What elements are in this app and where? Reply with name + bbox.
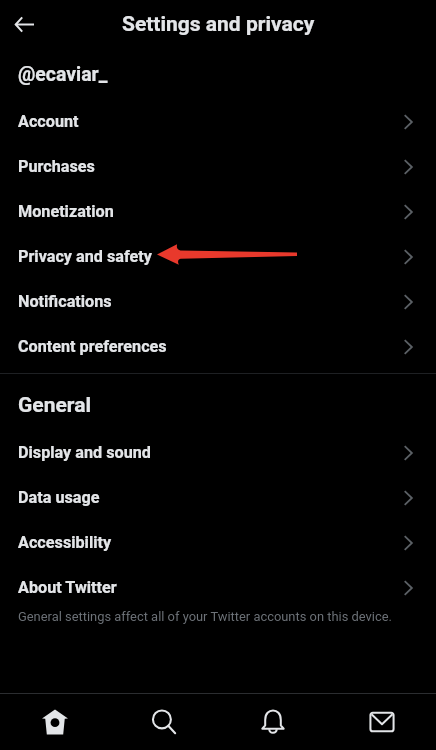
button[interactable]: Purchases bbox=[0, 144, 436, 189]
staticText: About Twitter bbox=[18, 578, 396, 597]
button[interactable]: Notifications bbox=[218, 694, 327, 750]
staticText: Settings and privacy bbox=[122, 12, 315, 37]
button[interactable]: Account bbox=[0, 99, 436, 144]
button[interactable]: About Twitter bbox=[0, 565, 436, 610]
staticText: @ecaviar_ bbox=[18, 63, 108, 86]
staticText: Notifications bbox=[18, 292, 396, 311]
staticText: Monetization bbox=[18, 202, 396, 221]
button[interactable]: Home bbox=[0, 694, 109, 750]
button[interactable]: Content preferences bbox=[0, 324, 436, 369]
button[interactable]: Data usage bbox=[0, 475, 436, 520]
button[interactable]: Accessibility bbox=[0, 520, 436, 565]
button[interactable]: Back bbox=[6, 6, 42, 42]
staticText: Content preferences bbox=[18, 337, 396, 356]
staticText: Purchases bbox=[18, 157, 396, 176]
staticText: General bbox=[18, 393, 91, 418]
staticText: General settings affect all of your Twit… bbox=[18, 609, 392, 624]
button[interactable]: Display and sound bbox=[0, 430, 436, 475]
staticText: Display and sound bbox=[18, 443, 396, 462]
staticText: Accessibility bbox=[18, 533, 396, 552]
button[interactable]: Search bbox=[109, 694, 218, 750]
button[interactable]: Monetization bbox=[0, 189, 436, 234]
staticText: Account bbox=[18, 112, 396, 131]
button[interactable]: Notifications bbox=[0, 279, 436, 324]
staticText: Data usage bbox=[18, 488, 396, 507]
button[interactable]: Privacy and safety bbox=[0, 234, 436, 279]
button[interactable]: Messages bbox=[327, 694, 436, 750]
staticText: Privacy and safety bbox=[18, 247, 396, 266]
